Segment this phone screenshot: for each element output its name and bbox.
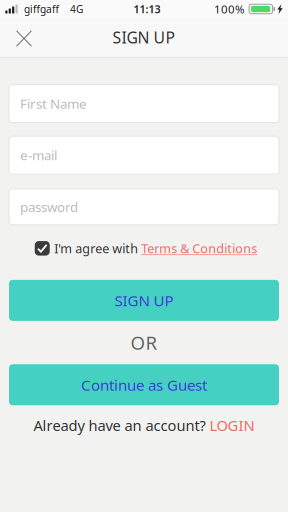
staticText: e-mail <box>20 146 57 164</box>
button[interactable]: Continue as Guest <box>9 364 279 405</box>
button[interactable]: password <box>9 189 279 225</box>
staticText: OR <box>130 330 157 355</box>
staticText: LOGIN <box>209 415 254 435</box>
staticText: 4G <box>70 2 83 16</box>
staticText: I'm agree with <box>54 240 138 257</box>
staticText: 100% <box>214 1 245 17</box>
button[interactable]: Already have an account? <box>33 415 254 435</box>
staticText: First Name <box>20 94 87 113</box>
staticText: SIGN UP <box>112 27 175 48</box>
button[interactable]: I'm agree with <box>31 240 257 257</box>
staticText: Terms & Conditions <box>141 240 257 257</box>
button[interactable]: SIGN UP <box>9 280 279 321</box>
staticText: SIGN UP <box>114 290 173 311</box>
button[interactable]: e-mail <box>9 136 279 174</box>
staticText: Continue as Guest <box>81 374 207 395</box>
staticText: 11:13 <box>133 2 160 16</box>
button[interactable]: Close <box>0 19 42 56</box>
staticText: Already have an account? <box>33 415 205 435</box>
staticText: password <box>20 198 78 216</box>
staticText: giffgaff <box>24 2 59 16</box>
button[interactable]: First Name <box>9 85 279 123</box>
